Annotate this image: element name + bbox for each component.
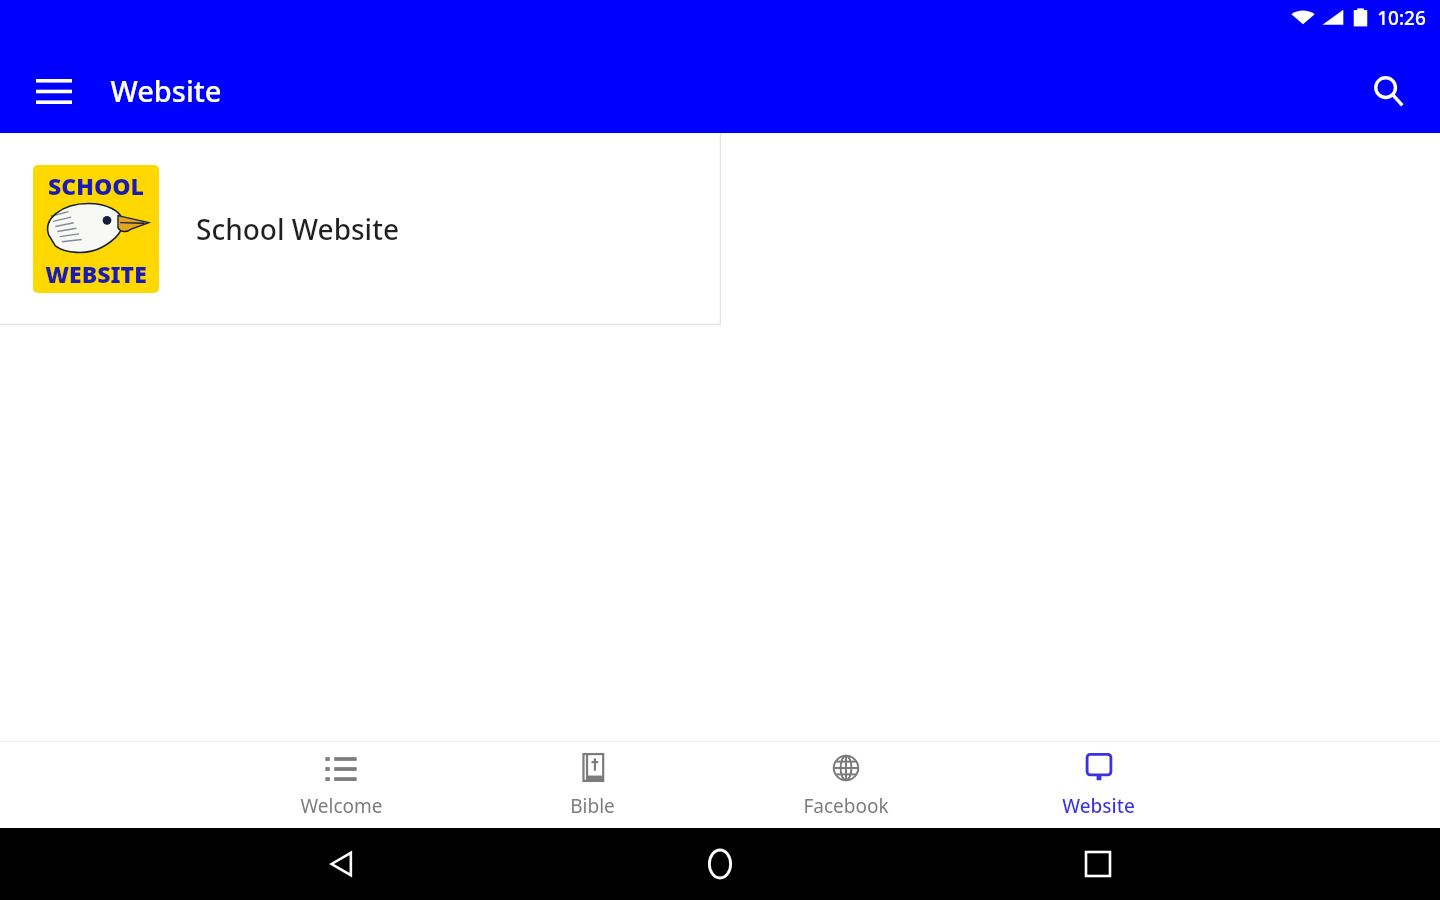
staticText: School Website	[196, 210, 399, 248]
button[interactable]: Recent apps	[1062, 828, 1134, 900]
button[interactable]: Back	[306, 828, 378, 900]
button[interactable]: Website	[972, 741, 1225, 828]
button[interactable]: Open navigation menu	[22, 59, 86, 123]
staticText: SCHOOL	[48, 170, 144, 201]
button[interactable]: Home	[684, 828, 756, 900]
staticText: 10:26	[1377, 5, 1426, 31]
staticText: Website	[1062, 793, 1135, 819]
button[interactable]: Bible	[466, 741, 719, 828]
staticText: Website	[110, 71, 222, 110]
staticText: Bible	[570, 793, 615, 819]
button[interactable]: Facebook	[719, 741, 972, 828]
button[interactable]: SCHOOL	[0, 133, 721, 325]
staticText: Welcome	[300, 793, 383, 819]
staticText: WEBSITE	[45, 258, 147, 289]
button[interactable]: Welcome	[216, 741, 466, 828]
button[interactable]: Search	[1356, 59, 1420, 123]
staticText: Facebook	[803, 793, 889, 819]
